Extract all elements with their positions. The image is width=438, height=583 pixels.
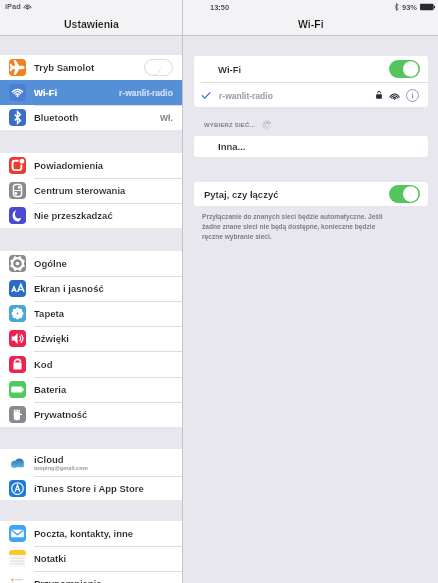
button[interactable]: Notatki <box>0 546 182 571</box>
staticText: Ustawienia <box>64 18 119 30</box>
staticText: Poczta, kontakty, inne <box>34 528 134 539</box>
staticText: Inna... <box>218 141 246 152</box>
button[interactable]: Tryb Samolot <box>0 55 182 80</box>
staticText: Nie przeszkadzać <box>34 210 113 221</box>
staticText: Prywatność <box>34 409 88 420</box>
button[interactable]: iTunes Store i App Store <box>0 476 182 500</box>
staticText: Przyłączanie do znanych sieci będzie aut… <box>202 213 395 240</box>
staticText: Wi-Fi <box>34 87 58 98</box>
button[interactable]: Pytaj, czy łączyć <box>194 182 428 206</box>
button[interactable]: Ogólne <box>0 251 182 276</box>
button[interactable]: Przypomnienia <box>0 571 182 583</box>
staticText: iTunes Store i App Store <box>34 483 144 494</box>
staticText: Przypomnienia <box>34 578 102 583</box>
staticText: Bateria <box>34 384 67 395</box>
button[interactable]: Bluetooth <box>0 105 182 130</box>
button[interactable]: Switch on <box>389 185 420 203</box>
button[interactable]: Network information <box>406 89 419 102</box>
staticText: Ekran i jasność <box>34 283 104 294</box>
staticText: tooping@gmail.com <box>34 465 88 471</box>
button[interactable]: Bateria <box>0 377 182 402</box>
button[interactable]: r-wanlit-radio <box>194 83 428 107</box>
button[interactable]: Powiadomienia <box>0 153 182 178</box>
staticText: Pytaj, czy łączyć <box>204 189 279 200</box>
button[interactable]: Centrum sterowania <box>0 178 182 203</box>
staticText: Wi-Fi <box>218 64 242 75</box>
button[interactable]: iCloud <box>0 449 182 476</box>
staticText: Dźwięki <box>34 333 69 344</box>
staticText: Notatki <box>34 553 67 564</box>
staticText: Wi-Fi <box>298 18 324 30</box>
staticText: iPad <box>5 2 21 10</box>
button[interactable]: Dźwięki <box>0 326 182 351</box>
staticText: r-wanlit-radio <box>219 91 273 100</box>
button[interactable]: Airplane mode switch <box>144 59 173 76</box>
staticText: Ogólne <box>34 258 67 269</box>
staticText: Wł. <box>160 113 173 122</box>
button[interactable]: Inna... <box>194 136 428 157</box>
staticText: Tryb Samolot <box>34 62 95 73</box>
staticText: 13:50 <box>210 3 230 11</box>
staticText: Centrum sterowania <box>34 185 126 196</box>
staticText: 93% <box>402 3 418 11</box>
button[interactable]: Nie przeszkadzać <box>0 203 182 228</box>
staticText: WYBIERZ SIEĆ... <box>204 122 256 129</box>
button[interactable]: Prywatność <box>0 402 182 427</box>
button[interactable]: Tapeta <box>0 301 182 326</box>
button[interactable]: Kod <box>0 351 182 377</box>
button[interactable]: Switch on <box>389 60 420 78</box>
staticText: Tapeta <box>34 308 64 319</box>
button[interactable]: Wi-Fi <box>0 80 182 105</box>
staticText: Bluetooth <box>34 112 79 123</box>
button[interactable]: Poczta, kontakty, inne <box>0 521 182 546</box>
button[interactable]: Ekran i jasność <box>0 276 182 301</box>
staticText: Kod <box>34 359 53 370</box>
button[interactable]: Wi-Fi <box>194 56 428 82</box>
staticText: Powiadomienia <box>34 160 104 171</box>
staticText: r-wanlit-radio <box>119 88 173 97</box>
staticText: iCloud <box>34 454 64 465</box>
